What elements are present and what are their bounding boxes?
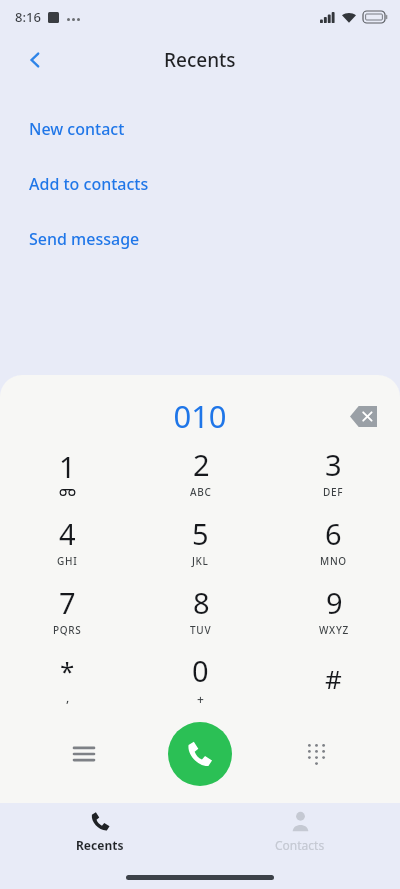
button[interactable]: 6 xyxy=(267,506,400,575)
staticText: 0 xyxy=(192,651,209,690)
button[interactable]: Backspace xyxy=(342,394,386,438)
staticText: Contacts xyxy=(275,837,325,853)
button[interactable]: Add to contacts xyxy=(0,166,400,202)
staticText: 010 xyxy=(0,395,400,437)
button[interactable]: Menu xyxy=(62,732,106,776)
staticText: 8 xyxy=(193,583,210,622)
button[interactable]: 9 xyxy=(267,575,400,644)
button[interactable]: 8 xyxy=(134,575,267,644)
staticText: * xyxy=(60,653,75,688)
staticText: Send message xyxy=(29,228,140,250)
staticText: 6 xyxy=(325,514,342,553)
staticText: 2 xyxy=(193,445,210,484)
staticText: Add to contacts xyxy=(29,173,149,195)
button[interactable]: * xyxy=(0,644,134,713)
button[interactable]: Keypad xyxy=(294,732,338,776)
staticText: 1 xyxy=(59,447,76,486)
button[interactable]: 7 xyxy=(0,575,134,644)
staticText: GHI xyxy=(57,554,78,568)
staticText: + xyxy=(197,691,205,707)
staticText: 3 xyxy=(325,445,342,484)
staticText: DEF xyxy=(323,485,344,499)
staticText: 7 xyxy=(59,583,76,622)
staticText: JKL xyxy=(192,554,209,568)
staticText: WXYZ xyxy=(319,623,349,637)
staticText: Recents xyxy=(76,837,124,853)
button[interactable]: 2 xyxy=(134,437,267,506)
button[interactable]: Back xyxy=(13,38,57,82)
button[interactable]: 4 xyxy=(0,506,134,575)
button[interactable]: 5 xyxy=(134,506,267,575)
staticText: TUV xyxy=(190,623,212,637)
button[interactable]: Send message xyxy=(0,221,400,257)
staticText: Recents xyxy=(164,47,236,73)
staticText: MNO xyxy=(320,554,347,568)
staticText: 4 xyxy=(59,514,76,553)
button[interactable]: # xyxy=(267,644,400,713)
staticText: 5 xyxy=(192,514,209,553)
staticText: 8:16 xyxy=(15,8,41,26)
staticText: # xyxy=(325,661,342,696)
button[interactable]: 3 xyxy=(267,437,400,506)
button[interactable]: New contact xyxy=(0,111,400,147)
button[interactable]: Call xyxy=(168,722,232,786)
staticText: PQRS xyxy=(53,623,82,637)
staticText: ABC xyxy=(190,485,212,499)
button[interactable]: Recents xyxy=(0,803,200,861)
button[interactable]: Contacts xyxy=(200,803,400,861)
staticText: 9 xyxy=(326,583,343,622)
button[interactable]: 0 xyxy=(134,644,267,713)
staticText: , xyxy=(66,689,70,705)
staticText: New contact xyxy=(29,118,125,140)
button[interactable]: 1 xyxy=(0,437,134,506)
